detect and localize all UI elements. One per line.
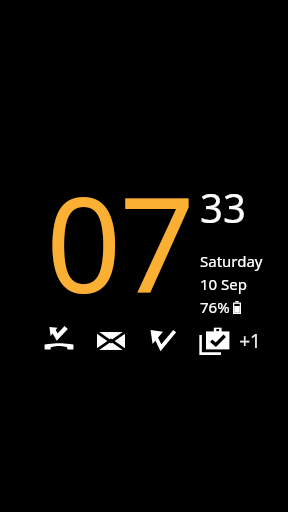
button[interactable]: 07 bbox=[46, 168, 263, 348]
staticText: 07 bbox=[46, 152, 194, 332]
staticText: 76% bbox=[200, 297, 230, 317]
staticText: 33 bbox=[200, 180, 246, 234]
button[interactable]: Missed call bbox=[36, 318, 82, 364]
button[interactable]: Incoming message bbox=[140, 318, 186, 364]
staticText: +1 bbox=[239, 328, 261, 354]
button[interactable]: +1 bbox=[239, 318, 261, 364]
button[interactable]: Unread email bbox=[88, 318, 134, 364]
staticText: 10 Sep bbox=[200, 274, 247, 294]
button[interactable]: Tasks bbox=[192, 318, 238, 364]
staticText: Saturday bbox=[200, 251, 263, 271]
other: Battery 76 percent bbox=[233, 301, 241, 314]
